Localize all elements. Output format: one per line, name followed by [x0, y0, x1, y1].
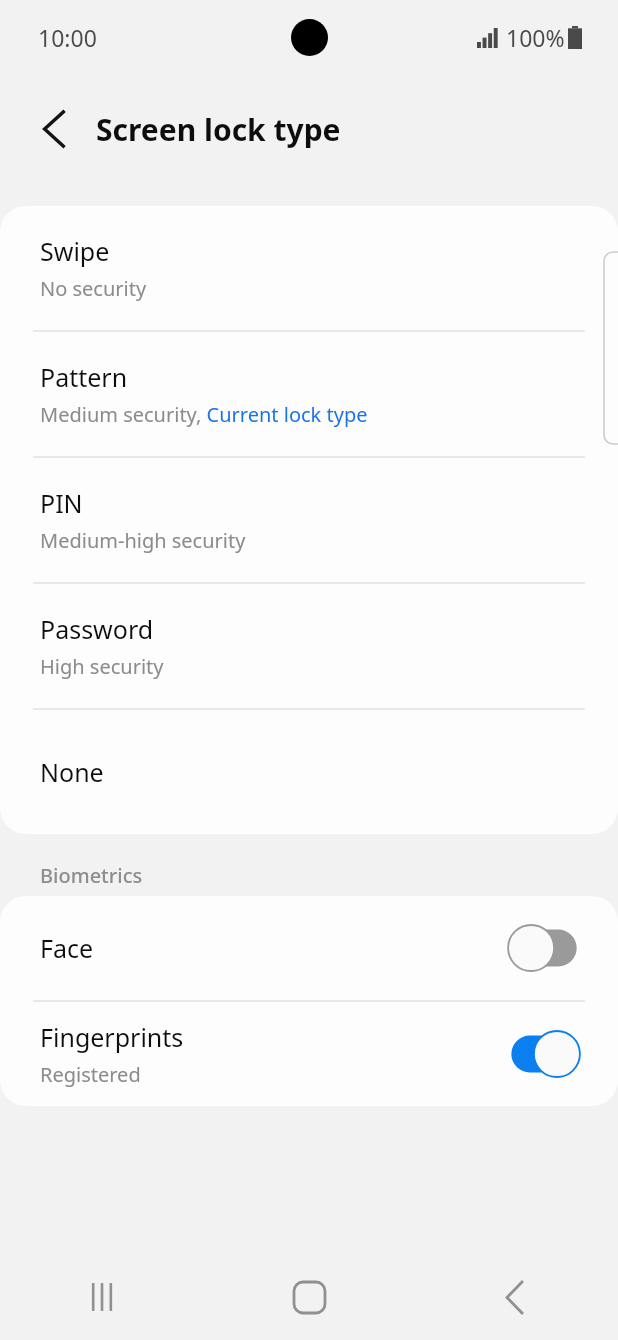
- button[interactable]: PIN: [0, 458, 618, 582]
- staticText: Screen lock type: [96, 109, 341, 150]
- staticText: PIN: [40, 486, 83, 520]
- staticText: Registered: [40, 1061, 141, 1088]
- staticText: Pattern: [40, 360, 128, 394]
- staticText: Face: [40, 931, 94, 965]
- staticText: High security: [40, 653, 164, 680]
- staticText: 10:00: [38, 22, 97, 53]
- staticText: No security: [40, 275, 147, 302]
- staticText: None: [40, 755, 104, 789]
- button[interactable]: Back: [412, 1254, 618, 1340]
- staticText: 100%: [506, 22, 565, 53]
- button[interactable]: Home: [206, 1254, 412, 1340]
- button[interactable]: On: [506, 1029, 582, 1079]
- staticText: Medium security, Current lock type: [40, 401, 368, 428]
- staticText: Fingerprints: [40, 1020, 184, 1054]
- staticText: Swipe: [40, 234, 110, 268]
- button[interactable]: None: [0, 710, 618, 834]
- button[interactable]: Off: [506, 923, 582, 973]
- staticText: Password: [40, 612, 154, 646]
- button[interactable]: Fingerprints: [0, 1002, 618, 1106]
- staticText: Medium-high security: [40, 527, 246, 554]
- button[interactable]: Face: [0, 896, 618, 1000]
- button[interactable]: Recent apps: [0, 1254, 206, 1340]
- button[interactable]: Pattern: [0, 332, 618, 456]
- button[interactable]: Swipe: [0, 206, 618, 330]
- button[interactable]: Back: [26, 100, 84, 158]
- staticText: Biometrics: [40, 862, 143, 889]
- button[interactable]: Password: [0, 584, 618, 708]
